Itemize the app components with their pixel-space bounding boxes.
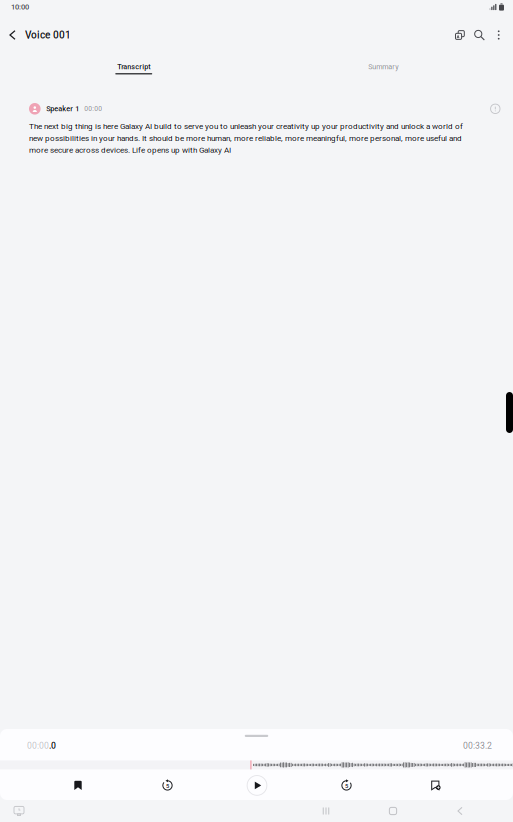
staticText: Summary — [368, 63, 398, 71]
staticText: 00:00 — [84, 105, 102, 113]
staticText: 5 — [166, 783, 169, 789]
button[interactable]: Add bookmark — [416, 774, 456, 796]
button[interactable]: Back — [0, 20, 25, 50]
button[interactable]: Bookmark — [58, 774, 98, 796]
button[interactable]: Hide keyboard — [4, 801, 34, 821]
staticText: Voice 001 — [25, 29, 71, 41]
button[interactable]: More options — [489, 20, 508, 50]
staticText: Speaker 1 — [46, 104, 79, 113]
button[interactable]: Forward 5 seconds — [326, 774, 366, 796]
button[interactable]: Translate — [450, 20, 470, 50]
button[interactable]: Transcript — [9, 58, 258, 78]
button[interactable]: Back — [440, 801, 480, 821]
staticText: 00:00 — [27, 741, 49, 751]
button[interactable]: Home — [373, 801, 413, 821]
staticText: The next big thing is here Galaxy AI bui… — [29, 122, 463, 155]
staticText: Transcript — [117, 63, 150, 71]
button[interactable]: Transcript information — [491, 104, 500, 113]
button[interactable]: Play — [237, 774, 277, 796]
button[interactable]: Recent apps — [306, 801, 346, 821]
staticText: 00:33.2 — [463, 741, 492, 751]
button[interactable]: Search — [470, 20, 489, 50]
button[interactable]: Rewind 5 seconds — [147, 774, 187, 796]
button[interactable]: Summary — [258, 58, 508, 78]
staticText: 10:00 — [11, 3, 29, 11]
staticText: .0 — [49, 741, 56, 751]
staticText: 5 — [345, 783, 348, 789]
